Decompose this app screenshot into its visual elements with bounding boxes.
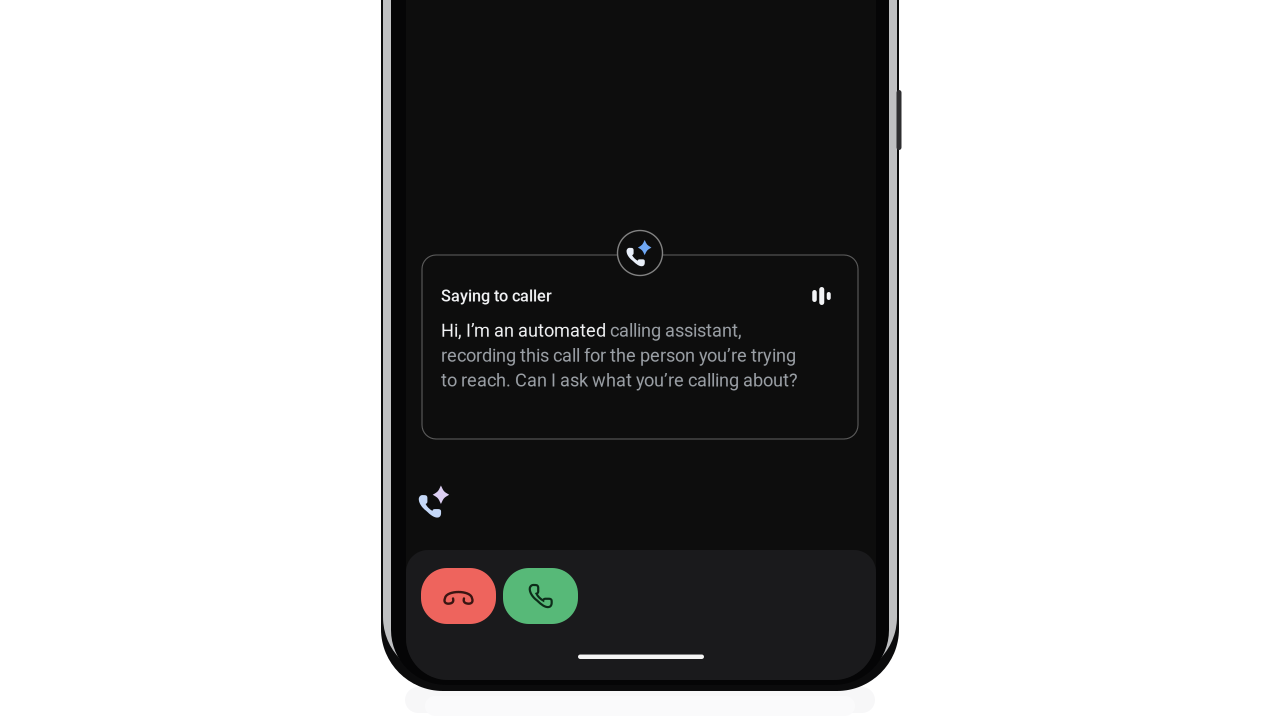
staticText: to reach. Can I ask what you’re calling … <box>441 370 798 391</box>
staticText: recording this call for the person you’r… <box>441 345 796 366</box>
button[interactable]: Decline call <box>421 568 496 624</box>
staticText: Hi, I’m an automated <box>441 320 610 341</box>
staticText: calling assistant, <box>610 320 742 341</box>
button[interactable]: Answer call <box>503 568 578 624</box>
staticText: Saying to caller <box>441 286 552 306</box>
